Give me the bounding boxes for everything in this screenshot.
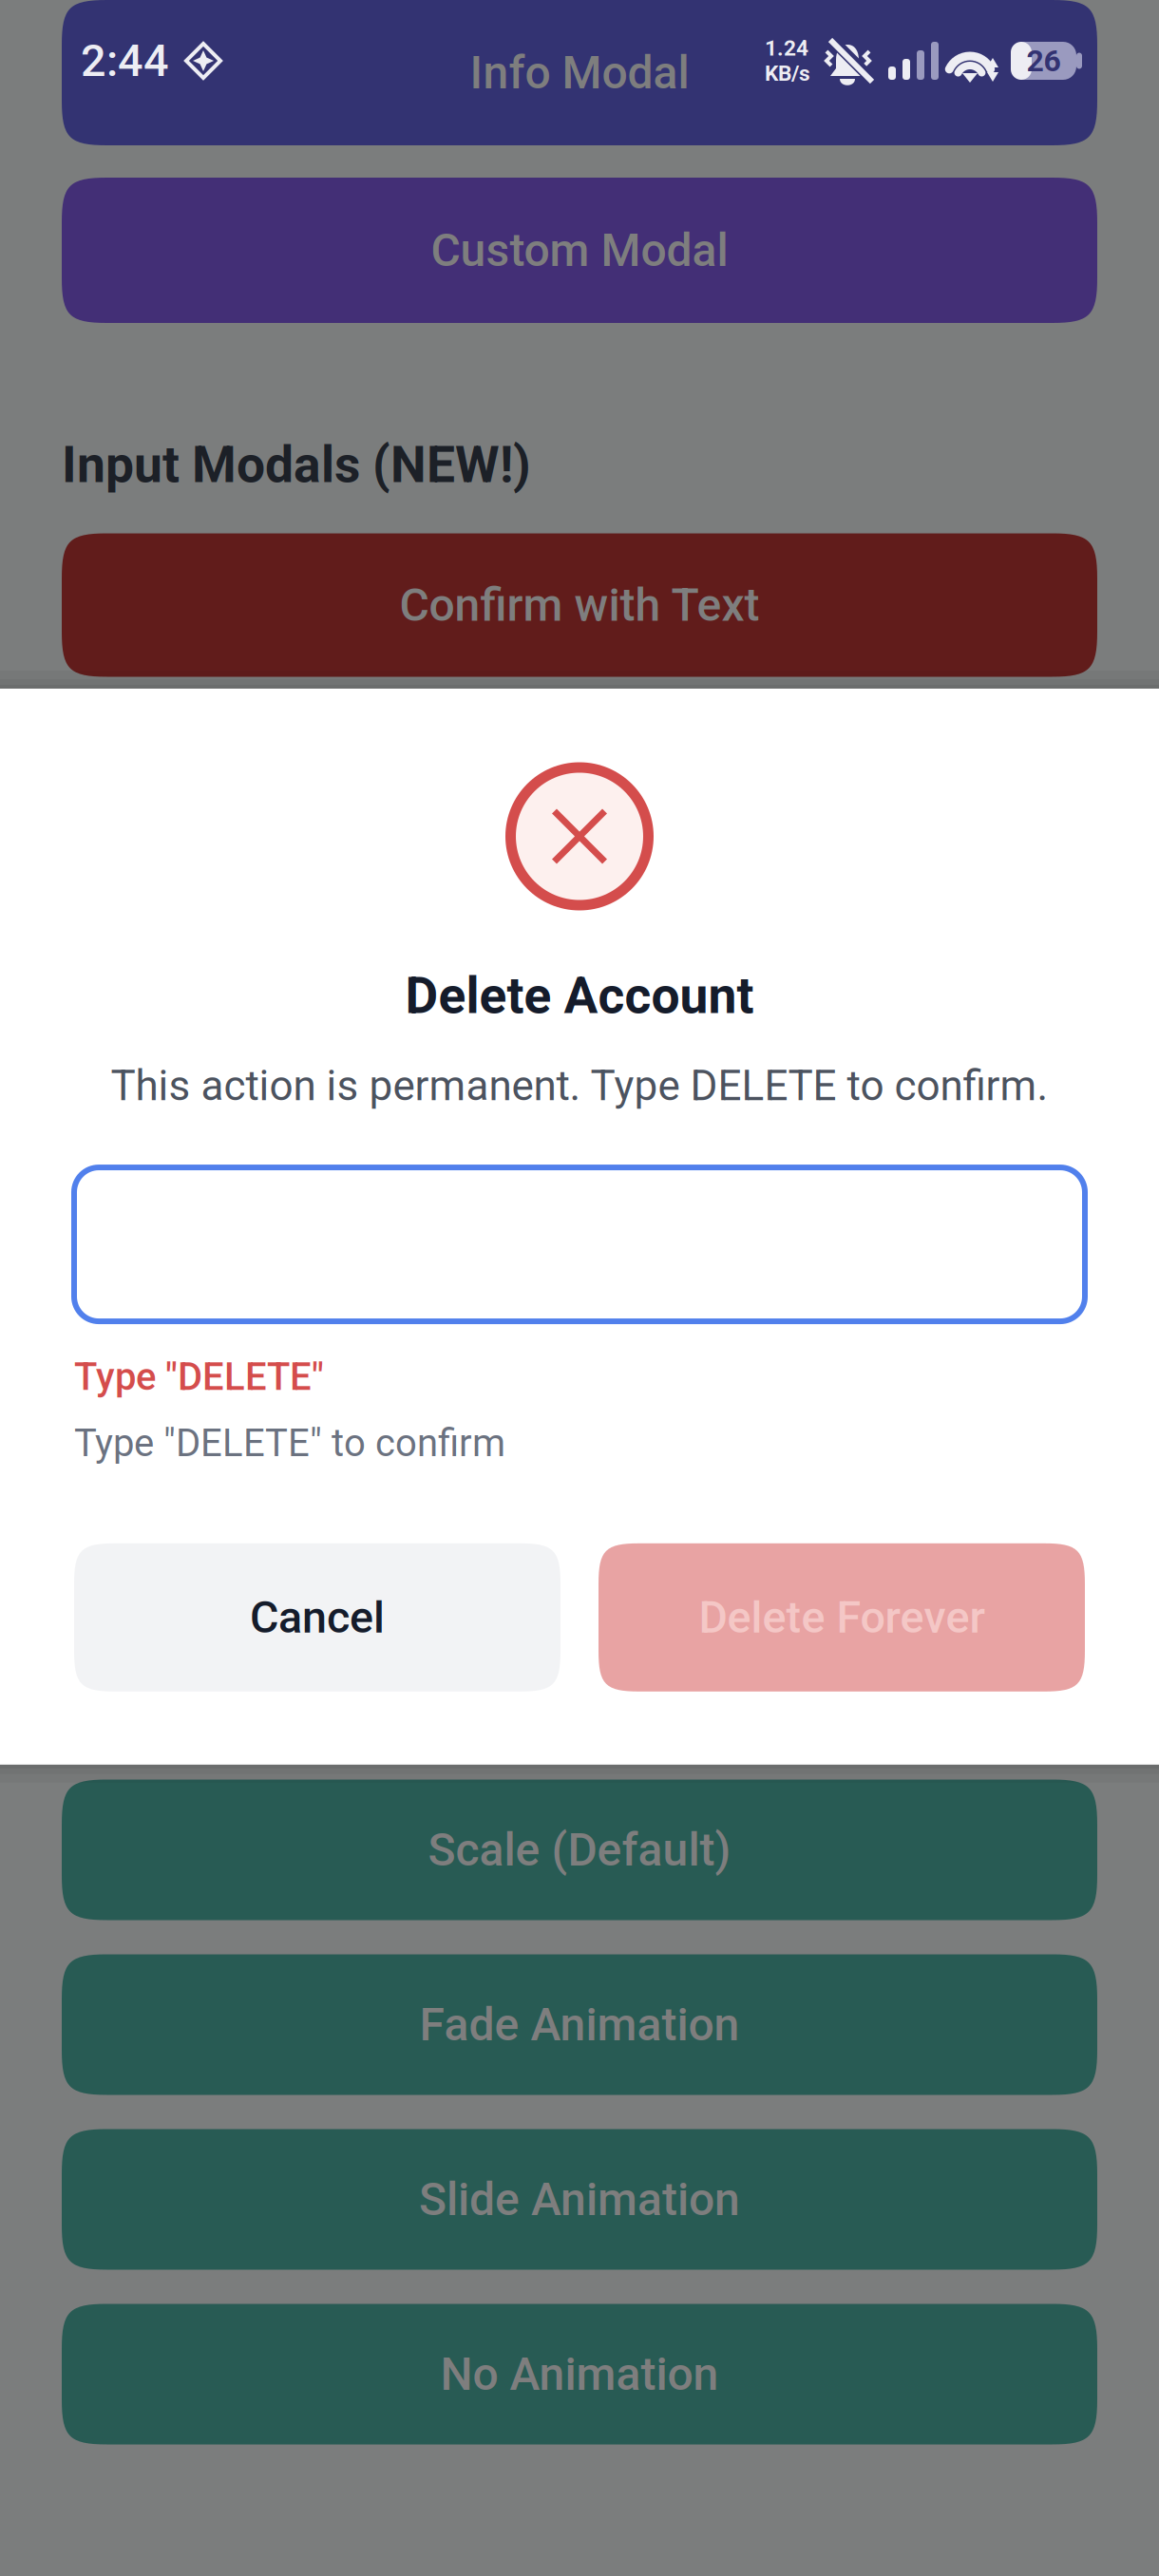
button[interactable]: Cancel [74,1543,560,1691]
staticText: Scale (Default) [428,1823,731,1877]
staticText: Info Modal [470,46,689,99]
staticText: 2:44 [81,35,169,87]
staticText: Fade Animation [419,1998,740,2051]
button[interactable]: Fade Animation [62,1954,1097,2095]
staticText: Delete Account [405,966,754,1025]
staticText: Type "DELETE" [74,1355,324,1399]
staticText: This action is permanent. Type DELETE to… [111,1061,1048,1110]
staticText: No Animation [440,2347,719,2401]
staticText: Custom Modal [431,224,728,277]
staticText: KB/s [765,61,810,86]
button[interactable]: Slide Animation [62,2129,1097,2270]
button[interactable]: Custom Modal [62,178,1097,323]
button[interactable]: Scale (Default) [62,1780,1097,1920]
button[interactable]: No Animation [62,2304,1097,2444]
staticText: 1.24 [765,36,808,61]
staticText: Type "DELETE" to confirm [74,1421,505,1465]
staticText: Input Modals (NEW!) [62,435,531,494]
staticText: Delete Forever [699,1591,985,1643]
button[interactable]: Confirm with Text [62,533,1097,677]
staticText: Slide Animation [419,2173,740,2226]
staticText: Cancel [250,1591,385,1643]
button[interactable]: Info Modal [62,0,1097,145]
staticText: 26 [1026,43,1061,79]
button[interactable]: Delete Forever [598,1543,1085,1691]
staticText: Confirm with Text [399,578,760,632]
